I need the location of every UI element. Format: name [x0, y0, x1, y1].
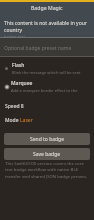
button[interactable]: Send to badge	[4, 133, 90, 145]
staticText: This SwiftUI/OS version covers the core …	[5, 160, 89, 179]
button[interactable]: Marquee	[0, 80, 94, 93]
staticText: Marquee	[11, 80, 33, 87]
staticText: Add a marquee border effect to the	[11, 88, 78, 93]
staticText: Mode	[5, 117, 20, 124]
button[interactable]: Flash	[0, 62, 94, 75]
staticText: Flash	[12, 62, 25, 69]
staticText: Blink the message which will be sent	[12, 70, 81, 75]
staticText: Speed 8	[5, 103, 24, 110]
staticText: Send to badge	[30, 136, 65, 143]
staticText: Optional badge preset name	[4, 45, 72, 52]
button[interactable]: Save badge	[4, 148, 90, 160]
staticText: Badge Magic	[31, 4, 63, 11]
staticText: badge text	[4, 34, 26, 40]
staticText: Laser	[20, 117, 33, 124]
staticText: Save badge	[33, 151, 61, 158]
staticText: This content is not available in your co…	[4, 20, 90, 34]
